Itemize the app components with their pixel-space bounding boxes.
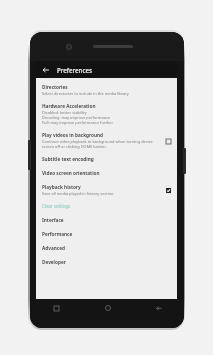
- button[interactable]: Advanced: [42, 245, 172, 251]
- staticText: Subtitle text encoding: [42, 156, 94, 162]
- staticText: Directories: [42, 84, 68, 90]
- staticText: Performance: [42, 231, 73, 237]
- button[interactable]: Recent apps: [30, 301, 82, 315]
- staticText: Disabled: better stability Decoding: may…: [42, 110, 114, 125]
- staticText: Advanced: [42, 245, 65, 251]
- staticText: Continue video playback to background wh…: [42, 139, 161, 149]
- button[interactable]: Interface: [42, 217, 172, 223]
- staticText: Interface: [42, 217, 64, 223]
- button[interactable]: Hardware Acceleration: [42, 103, 172, 125]
- staticText: Developer: [42, 259, 66, 265]
- staticText: Video screen orientation: [42, 170, 100, 176]
- button[interactable]: Play videos in background: [164, 137, 172, 145]
- button[interactable]: Back: [133, 301, 184, 315]
- staticText: Select directories to include in the med…: [42, 91, 129, 96]
- staticText: Play videos in background: [42, 132, 104, 138]
- button[interactable]: Video screen orientation: [42, 170, 172, 176]
- staticText: Save all media played in history section: [42, 191, 114, 196]
- staticText: Hardware Acceleration: [42, 103, 96, 109]
- button[interactable]: Developer: [42, 259, 172, 265]
- staticText: Playback history: [42, 184, 81, 190]
- button[interactable]: Clear settings: [42, 202, 172, 210]
- button[interactable]: Playback history: [42, 184, 172, 196]
- button[interactable]: Subtitle text encoding: [42, 156, 172, 162]
- staticText: Preferences: [57, 66, 93, 74]
- button[interactable]: Back: [40, 64, 51, 75]
- button[interactable]: Play videos in background: [42, 132, 172, 149]
- button[interactable]: Playback history: [164, 186, 172, 194]
- button[interactable]: Home: [82, 301, 133, 315]
- staticText: Clear settings: [42, 203, 71, 209]
- button[interactable]: Directories: [42, 84, 172, 96]
- button[interactable]: Performance: [42, 231, 172, 237]
